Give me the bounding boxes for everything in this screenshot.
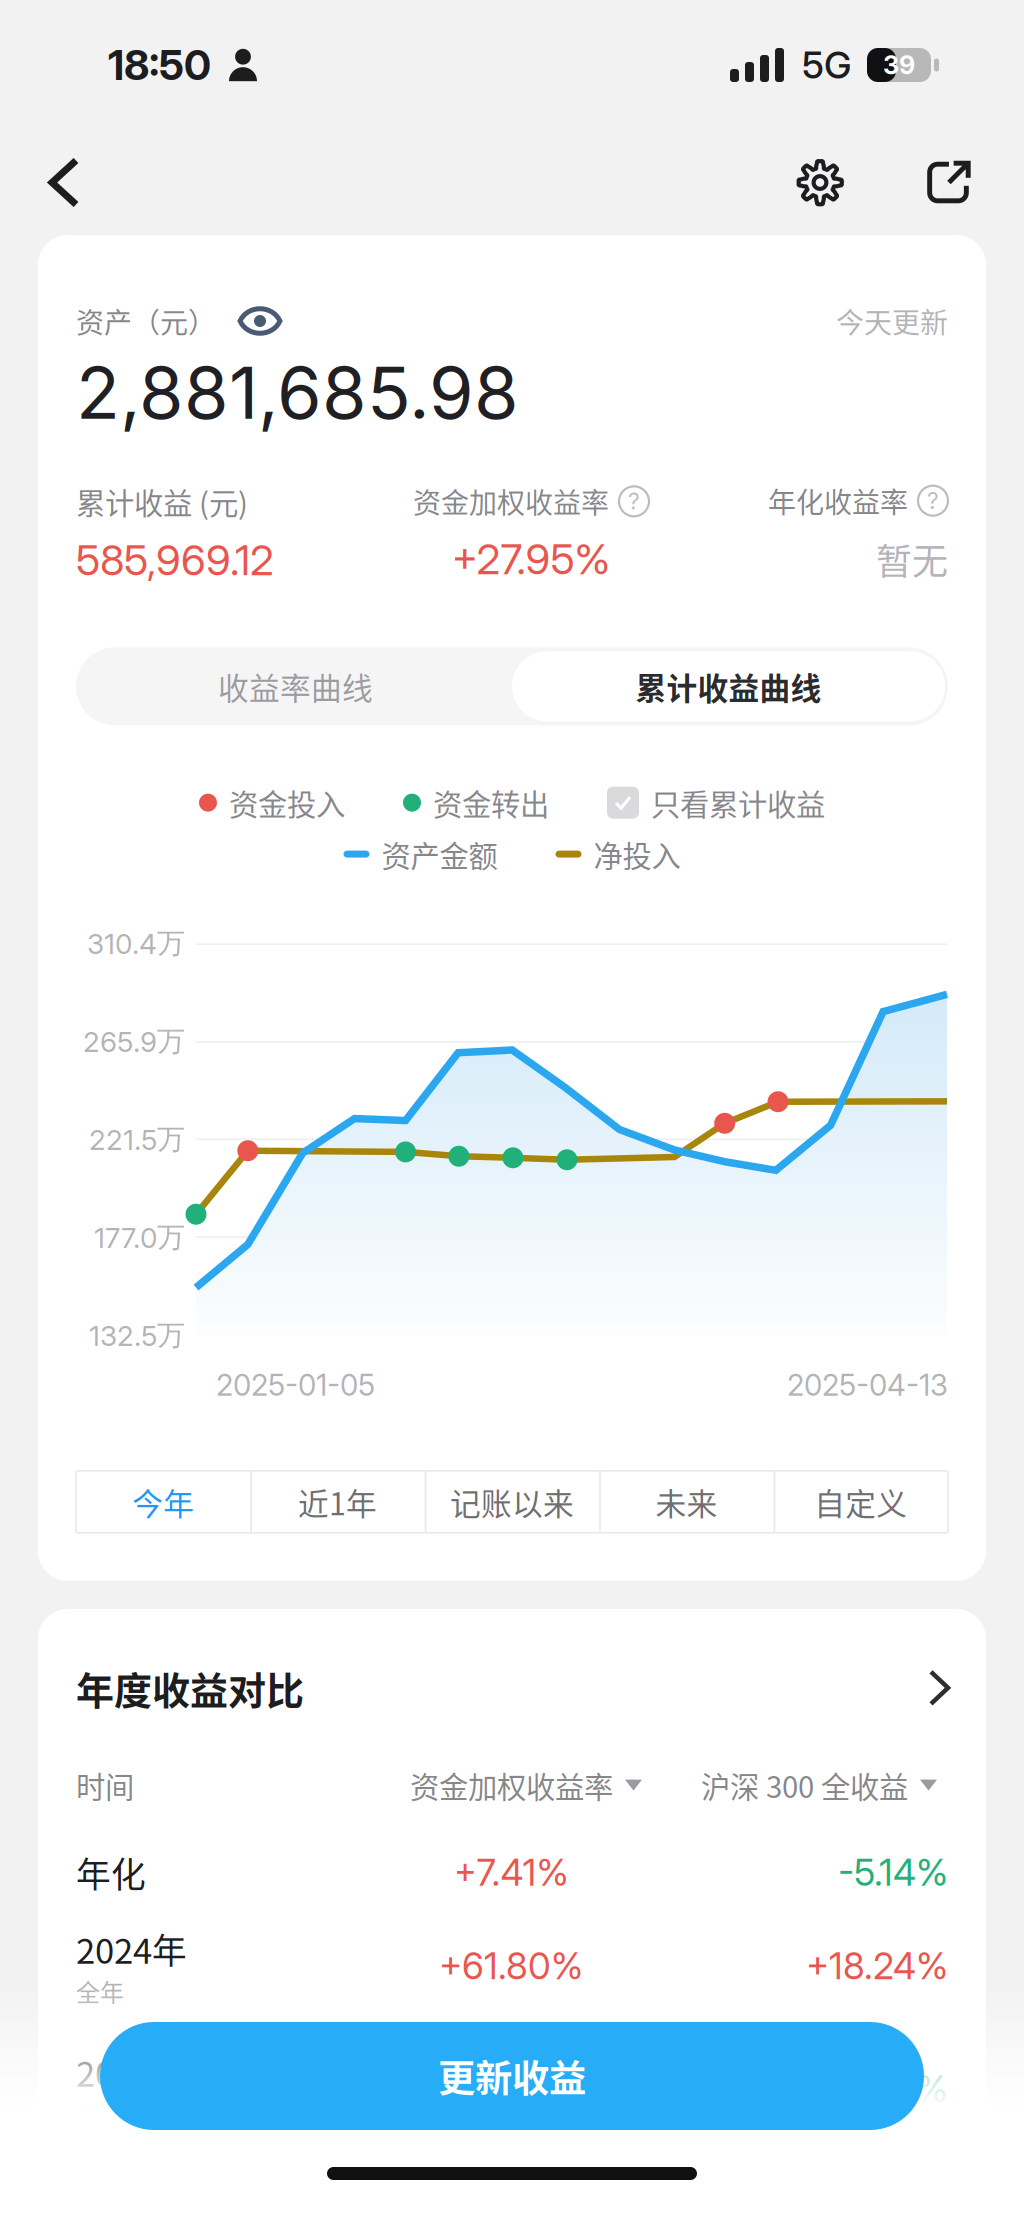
staticText: -5.14% xyxy=(838,1850,948,1895)
staticText: 2025-04-13 xyxy=(787,1367,948,1403)
staticText: 全年 xyxy=(76,2097,124,2131)
staticText: 177.0万 xyxy=(94,1220,185,1255)
button[interactable]: 只看累计收益 xyxy=(607,781,825,824)
staticText: 今天更新 xyxy=(836,301,948,341)
staticText: -9.86% xyxy=(827,2067,948,2111)
button[interactable]: Back xyxy=(22,140,106,224)
staticText: 265.9万 xyxy=(83,1024,185,1059)
button[interactable]: 近1年 xyxy=(250,1471,425,1533)
staticText: 时间 xyxy=(76,1764,134,1806)
button[interactable]: 更新收益 xyxy=(100,2022,924,2130)
button[interactable]: 今年 xyxy=(76,1471,250,1533)
staticText: 记账以来 xyxy=(450,1480,574,1524)
staticText: 累计收益 (元) xyxy=(76,480,248,523)
staticText: 资金加权收益率 xyxy=(413,481,609,522)
staticText: 暂无 xyxy=(876,533,948,585)
staticText: 今年 xyxy=(132,1480,194,1524)
button[interactable]: 累计收益曲线 xyxy=(512,651,945,721)
staticText: +61.80% xyxy=(439,1944,583,1988)
staticText: 2025-01-05 xyxy=(216,1367,375,1403)
staticText: 只看累计收益 xyxy=(651,781,825,824)
staticText: ? xyxy=(628,488,640,515)
staticText: 年度收益对比 xyxy=(76,1660,304,1715)
staticText: 221.5万 xyxy=(89,1122,185,1157)
staticText: 资金转出 xyxy=(433,781,549,824)
staticText: 310.4万 xyxy=(87,926,185,961)
staticText: 未来 xyxy=(655,1480,717,1524)
staticText: 585,969.12 xyxy=(76,535,274,585)
staticText: 132.5万 xyxy=(89,1318,185,1353)
staticText: 资金加权收益率 xyxy=(410,1764,613,1806)
staticText: 2,881,685.98 xyxy=(76,349,519,436)
staticText: 累计收益曲线 xyxy=(635,664,821,709)
staticText: 自定义 xyxy=(814,1480,907,1524)
staticText: 2023年 xyxy=(76,2046,187,2097)
staticText: 2024年 xyxy=(76,1923,187,1974)
staticText: 资产金额 xyxy=(381,833,497,875)
staticText: ? xyxy=(927,487,939,514)
button[interactable]: 记账以来 xyxy=(425,1471,599,1533)
staticText: 近1年 xyxy=(298,1480,377,1524)
staticText: 年化 xyxy=(76,1847,146,1897)
staticText: 沪深 300 全收益 xyxy=(701,1764,908,1806)
button[interactable]: 自定义 xyxy=(774,1471,948,1533)
staticText: 资金投入 xyxy=(229,781,345,824)
staticText: +27.95% xyxy=(451,534,610,584)
staticText: 更新收益 xyxy=(438,2049,586,2103)
staticText: 5G xyxy=(802,42,851,88)
staticText: 18:50 xyxy=(108,40,211,90)
button[interactable]: 未来 xyxy=(599,1471,774,1533)
staticText: +18.24% xyxy=(806,1944,948,1988)
staticText: 收益率曲线 xyxy=(218,664,373,709)
staticText: 年化收益率 xyxy=(768,480,908,521)
button[interactable]: Toggle balance visibility xyxy=(232,299,288,343)
staticText: 39 xyxy=(883,50,915,80)
button[interactable]: Share xyxy=(906,140,990,224)
button[interactable]: Settings xyxy=(778,140,862,224)
staticText: 资产（元） xyxy=(76,301,216,341)
button[interactable]: 年度收益对比 xyxy=(76,1660,948,1716)
staticText: 全年 xyxy=(76,1974,124,2008)
staticText: 净投入 xyxy=(593,833,680,875)
staticText: +7.41% xyxy=(453,1850,568,1895)
button[interactable]: 收益率曲线 xyxy=(79,651,512,721)
